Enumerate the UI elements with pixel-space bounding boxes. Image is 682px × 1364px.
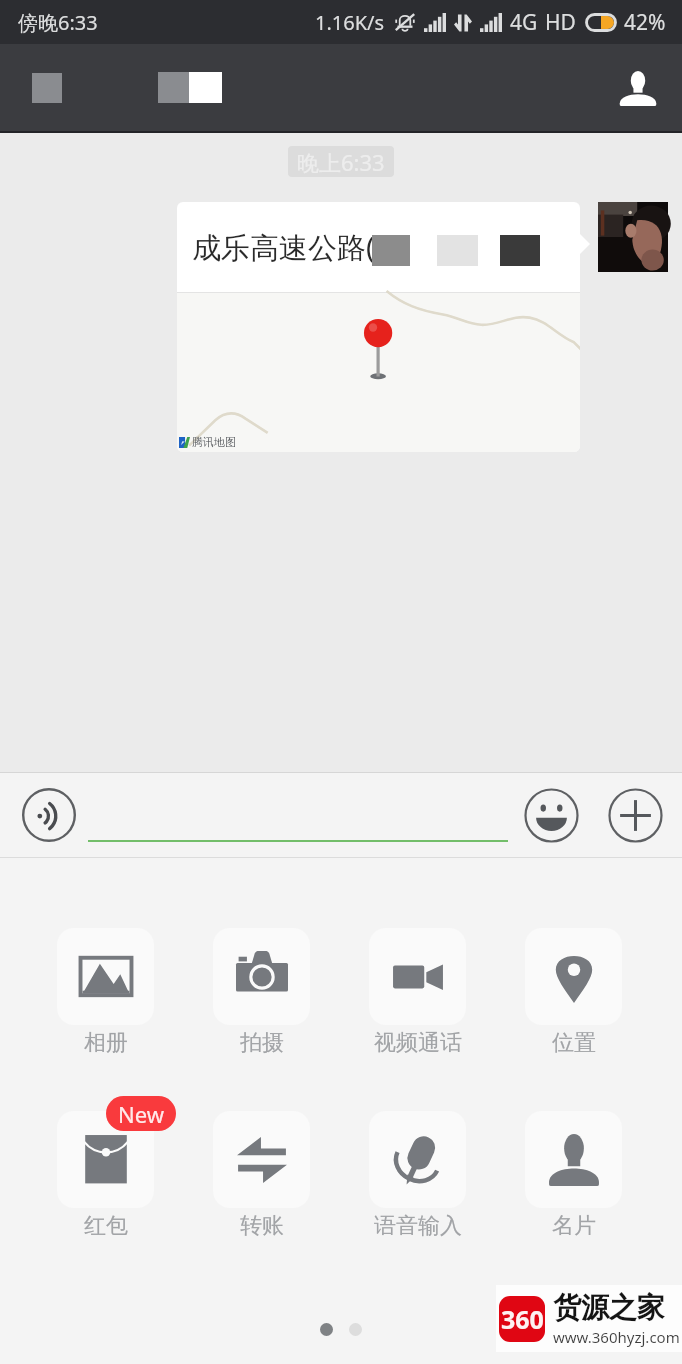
button[interactable]: Avatar (598, 202, 668, 272)
button[interactable]: 语音输入 (369, 1111, 466, 1244)
button[interactable]: 成乐高速公路( (177, 202, 580, 452)
button[interactable]: 拍摄 (213, 928, 310, 1061)
staticText: 视频通话 (374, 1029, 462, 1057)
staticText: 360 (501, 1302, 544, 1336)
staticText: 相册 (84, 1029, 128, 1057)
staticText: 红包 (84, 1212, 128, 1240)
staticText: 位置 (552, 1029, 596, 1057)
staticText: 语音输入 (374, 1212, 462, 1240)
staticText: HD (545, 8, 576, 37)
staticText: 名片 (552, 1212, 596, 1240)
staticText: 42% (624, 8, 666, 37)
button[interactable]: 名片 (525, 1111, 622, 1244)
button[interactable]: Emoji (509, 773, 593, 857)
button[interactable]: 相册 (57, 928, 154, 1061)
button[interactable]: Back (19, 60, 75, 116)
staticText: 货源之家 (553, 1290, 665, 1325)
staticText: New (118, 1099, 164, 1129)
button[interactable]: 转账 (213, 1111, 310, 1244)
staticText: www.360hyzj.com (553, 1327, 680, 1347)
staticText: 转账 (240, 1212, 284, 1240)
staticText: 4G (510, 8, 538, 37)
button[interactable]: More (593, 773, 677, 857)
staticText: 1.16K/s (315, 9, 385, 36)
staticText: 拍摄 (240, 1029, 284, 1057)
staticText: 腾讯地图 (192, 435, 236, 449)
button[interactable]: New (57, 1111, 154, 1244)
button[interactable]: 视频通话 (369, 928, 466, 1061)
button[interactable]: 位置 (525, 928, 622, 1061)
button[interactable]: Voice input (14, 780, 84, 850)
staticText: 成乐高速公路( (192, 227, 375, 267)
staticText: 傍晚6:33 (18, 9, 98, 36)
staticText: 晚上6:33 (297, 147, 385, 177)
button[interactable]: Contact info (609, 59, 667, 117)
